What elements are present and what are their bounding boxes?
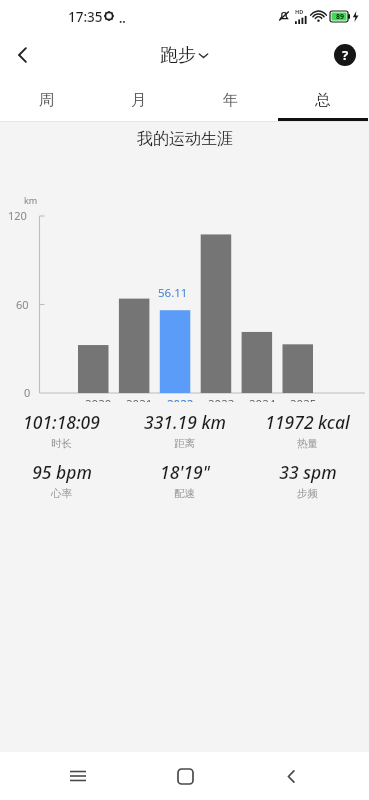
staticText: 总	[315, 90, 331, 110]
staticText: 101:18:09	[23, 410, 100, 434]
staticText: 跑步	[160, 44, 196, 67]
staticText: 17:35	[68, 8, 103, 26]
button[interactable]: Home	[165, 756, 205, 796]
button[interactable]: 跑步	[160, 44, 209, 67]
staticText: 89	[336, 12, 345, 22]
staticText: ?	[342, 46, 349, 64]
button[interactable]: 年	[185, 78, 277, 121]
button[interactable]: Back	[0, 32, 46, 78]
staticText: 2020	[85, 396, 112, 412]
staticText: 2024	[249, 396, 276, 412]
staticText: 心率	[51, 487, 72, 500]
staticText: 距离	[174, 437, 195, 450]
staticText: 我的运动生涯	[137, 129, 233, 149]
button[interactable]: Recents	[58, 756, 98, 796]
staticText: 18'19"	[160, 460, 210, 484]
staticText: 331.19 km	[144, 410, 226, 434]
staticText: 周	[39, 90, 55, 110]
staticText: 时长	[51, 437, 72, 450]
staticText: ··	[119, 13, 126, 29]
staticText: km	[24, 194, 38, 206]
staticText: 11972 kcal	[265, 410, 350, 434]
staticText: 热量	[297, 437, 318, 450]
staticText: 月	[131, 90, 147, 110]
staticText: 2025	[290, 396, 317, 412]
button[interactable]: 总	[277, 78, 369, 121]
staticText: 2022	[167, 396, 194, 412]
staticText: 配速	[174, 487, 195, 500]
staticText: 2021	[126, 396, 153, 412]
staticText: 0	[24, 385, 31, 400]
staticText: 95 bpm	[32, 460, 92, 484]
button[interactable]: 周	[0, 78, 93, 121]
staticText: 33 spm	[279, 460, 337, 484]
staticText: 年	[223, 90, 239, 110]
staticText: 步频	[297, 487, 318, 500]
staticText: HD	[295, 8, 304, 15]
staticText: 56.11	[158, 285, 188, 301]
button[interactable]: Help	[332, 42, 358, 68]
button[interactable]: 月	[93, 78, 185, 121]
staticText: 60	[16, 297, 29, 312]
button[interactable]: Back	[271, 756, 311, 796]
staticText: 2023	[208, 396, 235, 412]
staticText: 120	[8, 208, 27, 223]
